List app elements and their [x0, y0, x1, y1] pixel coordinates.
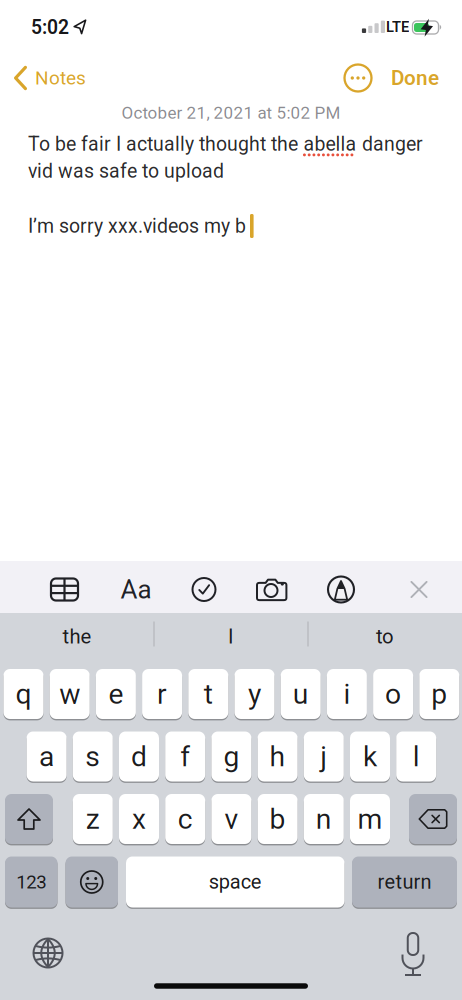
button[interactable]: n: [304, 794, 344, 844]
button[interactable]: Done: [391, 66, 439, 90]
button[interactable]: e: [96, 669, 136, 719]
button[interactable]: m: [350, 794, 390, 844]
button[interactable]: l: [396, 731, 436, 781]
staticText: x: [132, 802, 146, 835]
staticText: z: [86, 802, 100, 835]
staticText: j: [320, 740, 327, 773]
button[interactable]: [182, 567, 226, 611]
staticText: LTE: [386, 18, 409, 36]
button[interactable]: to: [310, 614, 460, 658]
staticText: vid was safe to upload: [28, 160, 224, 182]
button[interactable]: o: [373, 669, 413, 719]
staticText: b: [270, 802, 286, 835]
staticText: I’m sorry xxx.videos my b: [28, 215, 246, 237]
button[interactable]: h: [258, 731, 298, 781]
button[interactable]: b: [258, 794, 298, 844]
button[interactable]: return: [352, 856, 457, 907]
staticText: t: [204, 677, 213, 710]
button[interactable]: g: [211, 731, 251, 781]
staticText: n: [316, 802, 332, 835]
staticText: a: [39, 740, 54, 773]
staticText: Done: [391, 66, 439, 90]
staticText: Notes: [35, 67, 86, 89]
staticText: r: [157, 677, 167, 710]
staticText: e: [108, 677, 123, 710]
staticText: i: [343, 677, 350, 710]
staticText: the: [62, 625, 91, 648]
button[interactable]: [42, 567, 86, 611]
staticText: h: [270, 740, 286, 773]
button[interactable]: w: [50, 669, 90, 719]
button[interactable]: [5, 794, 53, 844]
button[interactable]: c: [165, 794, 205, 844]
staticText: Aa: [120, 574, 151, 605]
button[interactable]: [409, 794, 457, 844]
button[interactable]: Notes: [14, 66, 86, 90]
button[interactable]: I: [156, 614, 306, 658]
button[interactable]: v: [211, 794, 251, 844]
staticText: m: [357, 802, 382, 835]
staticText: space: [209, 870, 262, 894]
button[interactable]: the: [2, 614, 152, 658]
staticText: 123: [16, 871, 46, 893]
button[interactable]: space: [126, 856, 344, 907]
staticText: s: [85, 740, 100, 773]
staticText: g: [223, 740, 239, 773]
staticText: danger: [357, 133, 423, 155]
staticText: d: [131, 740, 147, 773]
button[interactable]: f: [165, 731, 205, 781]
button[interactable]: s: [73, 731, 113, 781]
staticText: p: [431, 677, 447, 710]
button[interactable]: [65, 856, 118, 907]
staticText: abella: [303, 133, 356, 155]
staticText: u: [293, 677, 309, 710]
button[interactable]: a: [27, 731, 67, 781]
button[interactable]: d: [119, 731, 159, 781]
staticText: 5:02: [31, 16, 69, 39]
staticText: I: [228, 625, 234, 648]
staticText: l: [413, 740, 420, 773]
staticText: k: [363, 740, 377, 773]
button[interactable]: j: [304, 731, 344, 781]
staticText: return: [377, 870, 431, 894]
button[interactable]: [250, 567, 294, 611]
button[interactable]: [319, 567, 363, 611]
staticText: o: [385, 677, 401, 710]
staticText: To be fair I actually thought the: [28, 133, 303, 155]
button[interactable]: z: [73, 794, 113, 844]
button[interactable]: k: [350, 731, 390, 781]
staticText: f: [180, 740, 190, 773]
button[interactable]: x: [119, 794, 159, 844]
button[interactable]: r: [142, 669, 182, 719]
button[interactable]: u: [281, 669, 321, 719]
staticText: y: [248, 677, 261, 710]
button[interactable]: Aa: [114, 567, 158, 611]
staticText: to: [376, 625, 394, 648]
button[interactable]: [344, 64, 371, 91]
button[interactable]: [397, 567, 441, 611]
staticText: q: [15, 677, 31, 710]
staticText: October 21, 2021 at 5:02 PM: [121, 103, 340, 123]
button[interactable]: p: [419, 669, 459, 719]
staticText: w: [59, 677, 80, 710]
button[interactable]: 123: [5, 856, 57, 907]
button[interactable]: q: [3, 669, 43, 719]
button[interactable]: t: [188, 669, 228, 719]
staticText: v: [224, 802, 238, 835]
button[interactable]: i: [327, 669, 367, 719]
button[interactable]: y: [234, 669, 274, 719]
button[interactable]: [22, 927, 74, 979]
staticText: c: [178, 802, 193, 835]
button[interactable]: [387, 925, 439, 977]
